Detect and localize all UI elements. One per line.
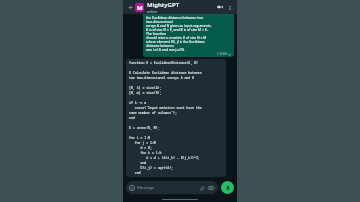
button[interactable]: MightyGPT	[147, 1, 215, 14]
button[interactable]: Back	[126, 3, 134, 11]
staticText: M	[137, 4, 143, 12]
button[interactable]: M	[135, 3, 144, 12]
button[interactable]: function D = EuclideanDistance(A, B) % C…	[126, 59, 226, 177]
staticText: 1:34 AM	[217, 52, 227, 56]
button[interactable]: the Euclidean distance between two two-d…	[143, 14, 234, 57]
button[interactable]: Camera	[207, 184, 215, 192]
staticText: Message	[137, 185, 155, 191]
button[interactable]: Voice message	[221, 181, 234, 194]
staticText: online	[147, 9, 158, 14]
staticText: MightyGPT	[147, 1, 180, 9]
staticText: function D = EuclideanDistance(A, B) % C…	[129, 61, 202, 175]
button[interactable]: Message	[126, 181, 218, 194]
button[interactable]: Attach	[198, 184, 206, 192]
button[interactable]: Video call	[215, 2, 225, 12]
button[interactable]: More options	[225, 3, 234, 12]
staticText: the Euclidean distance between two two-d…	[146, 15, 212, 52]
